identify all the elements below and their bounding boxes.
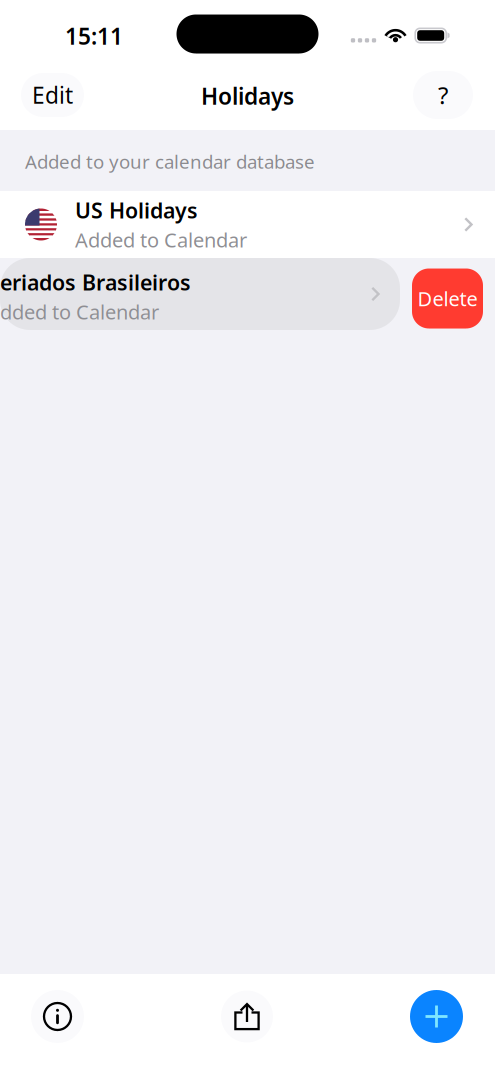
button[interactable]: Info	[31, 990, 84, 1043]
button[interactable]: US Holidays	[0, 191, 495, 258]
staticText: dded to Calendar	[0, 298, 159, 325]
staticText: US Holidays	[75, 196, 198, 224]
staticText: Holidays	[201, 81, 294, 111]
staticText: 15:11	[65, 21, 123, 51]
button[interactable]: Help	[413, 71, 473, 119]
staticText: Delete	[417, 285, 477, 312]
button[interactable]: Add	[410, 990, 463, 1043]
staticText: eriados Brasileiros	[0, 268, 191, 296]
staticText: Added to your calendar database	[25, 149, 315, 174]
button[interactable]: Delete	[412, 268, 483, 328]
button[interactable]: Share	[221, 990, 273, 1042]
staticText: ?	[438, 79, 448, 111]
staticText: Added to Calendar	[75, 226, 247, 253]
staticText: Edit	[32, 80, 73, 110]
button[interactable]: Edit	[21, 73, 84, 117]
